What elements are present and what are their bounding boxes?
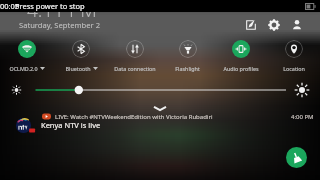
button[interactable]: Edit quick settings <box>245 19 257 31</box>
staticText: 4:11 PM <box>27 0 97 23</box>
staticText: Location <box>283 65 305 72</box>
button[interactable]: Data connection <box>108 40 161 72</box>
button[interactable]: Flashlight <box>161 40 214 72</box>
staticText: Press power to stop <box>15 1 85 11</box>
button[interactable]: LIVE: Watch #NTVWeekendEdition with Vict… <box>0 111 320 122</box>
staticText: Data connection <box>114 65 156 72</box>
button[interactable]: Kenya NTV is live <box>0 117 320 133</box>
staticText: Bluetooth <box>65 65 91 72</box>
button[interactable]: Location <box>267 40 320 72</box>
staticText: Flashlight <box>175 65 200 72</box>
button[interactable]: User profile <box>291 19 303 31</box>
button[interactable]: Bluetooth <box>54 40 108 72</box>
staticText: Saturday, September 2 <box>19 20 101 30</box>
staticText: Kenya NTV is live <box>41 120 101 130</box>
staticText: Audio profiles <box>223 65 259 72</box>
staticText: LIVE: Watch #NTVWeekendEdition with Vict… <box>55 113 213 121</box>
staticText: OCLMD.2.0 <box>9 65 38 72</box>
button[interactable]: Clear all notifications <box>286 147 307 168</box>
button[interactable]: Settings <box>268 19 280 31</box>
staticText: 00:05 <box>0 1 20 11</box>
staticText: 4:00 PM <box>291 113 314 121</box>
button[interactable]: Audio profiles <box>214 40 267 72</box>
button[interactable]: OCLMD.2.0 <box>0 40 54 72</box>
